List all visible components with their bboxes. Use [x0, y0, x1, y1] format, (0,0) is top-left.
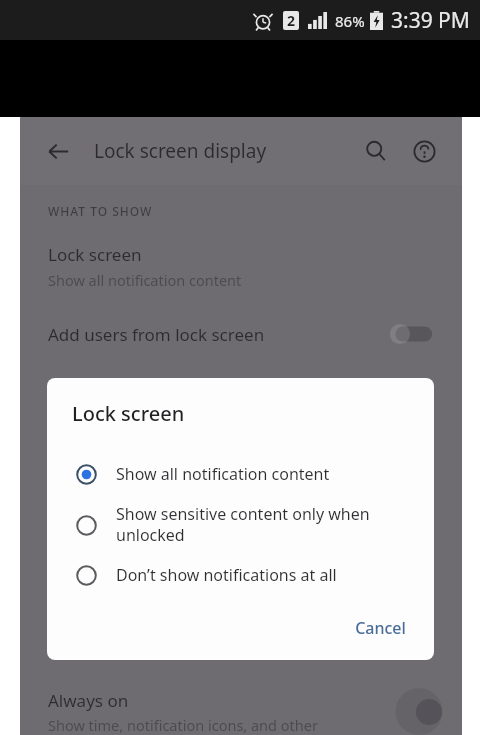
staticText: Cancel [355, 617, 406, 639]
button[interactable]: Add users from lock screen [20, 322, 462, 346]
staticText: WHEN TO SHOW [48, 646, 155, 662]
staticText: Show all notification content [116, 463, 330, 485]
staticText: Add users from lock screen [48, 323, 388, 346]
button[interactable]: Show all notification content [47, 451, 434, 497]
button[interactable]: Back [38, 131, 78, 171]
staticText: Don’t show notifications at all [116, 564, 337, 586]
staticText: Show time, notification icons, and other [48, 715, 318, 735]
staticText: Show sensitive content only when unlocke… [116, 503, 416, 546]
button[interactable]: Don’t show notifications at all [47, 552, 434, 598]
staticText: 3:39 PM [391, 6, 470, 35]
staticText: WHAT TO SHOW [48, 203, 153, 219]
staticText: Lock screen [72, 400, 185, 427]
staticText: 86% [335, 11, 365, 31]
button[interactable]: Show sensitive content only when unlocke… [47, 497, 434, 552]
staticText: 2 [287, 11, 296, 30]
staticText: Always on [48, 689, 129, 712]
staticText: Lock screen [48, 243, 142, 266]
button[interactable]: Search [356, 131, 396, 171]
staticText: Show all notification content [48, 270, 242, 290]
staticText: Lock screen display [94, 138, 356, 164]
button[interactable]: Help [404, 131, 444, 171]
button[interactable]: Cancel [343, 608, 418, 648]
button[interactable]: Lock screen [20, 241, 462, 292]
button[interactable]: Always on [20, 688, 462, 735]
